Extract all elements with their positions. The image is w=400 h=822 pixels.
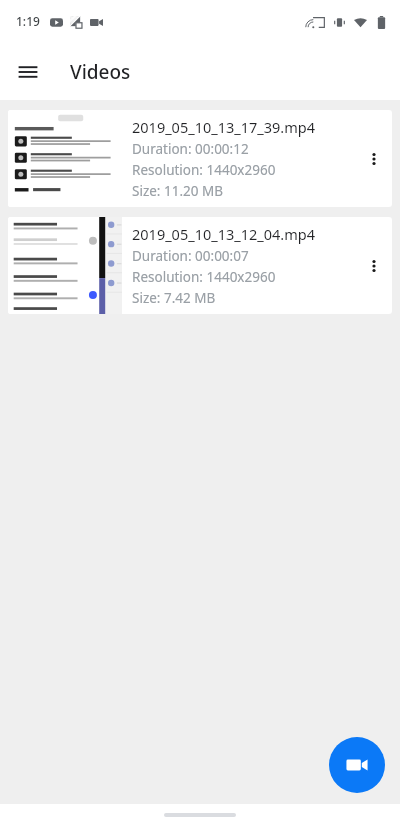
button[interactable]: Record video — [329, 737, 385, 793]
staticText: Resolution: 1440x2960 — [132, 161, 276, 179]
staticText: Size: 11.20 MB — [132, 182, 224, 200]
staticText: Duration: 00:00:12 — [132, 140, 249, 158]
staticText: Size: 7.42 MB — [132, 289, 216, 307]
button[interactable]: More options — [356, 110, 392, 207]
button[interactable]: 2019_05_10_13_12_04.mp4 — [8, 217, 392, 314]
button[interactable]: More options — [356, 217, 392, 314]
button[interactable]: Open navigation drawer — [10, 54, 46, 90]
staticText: Resolution: 1440x2960 — [132, 268, 276, 286]
staticText: 1:19 — [16, 13, 40, 29]
staticText: 2019_05_10_13_12_04.mp4 — [132, 224, 315, 244]
staticText: 2019_05_10_13_17_39.mp4 — [132, 117, 315, 137]
staticText: Videos — [70, 59, 131, 85]
staticText: Duration: 00:00:07 — [132, 247, 249, 265]
button[interactable]: 2019_05_10_13_17_39.mp4 — [8, 110, 392, 207]
